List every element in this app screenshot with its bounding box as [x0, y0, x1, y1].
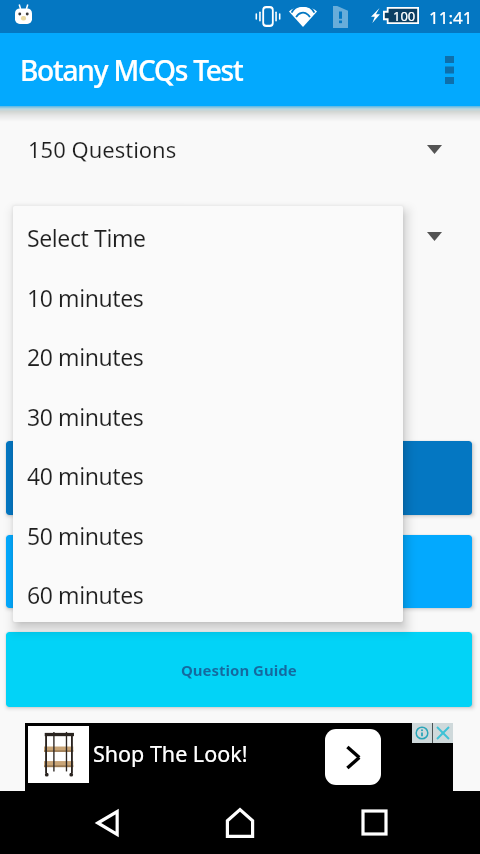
staticText: Question Guide [181, 660, 297, 680]
staticText: Select Time [28, 221, 146, 251]
staticText: 60 minutes [27, 579, 144, 610]
button[interactable]: Ad information [412, 723, 432, 743]
staticText: 150 Questions [28, 134, 177, 164]
button[interactable]: Back [74, 791, 140, 854]
button[interactable]: Select Time [13, 207, 403, 267]
button[interactable]: Home [207, 791, 273, 854]
staticText: 11:41 [429, 6, 473, 29]
staticText: 30 minutes [27, 401, 144, 432]
staticText: 40 minutes [27, 460, 144, 491]
staticText: 100 [393, 7, 416, 24]
button[interactable]: Result [6, 535, 472, 608]
button[interactable]: 150 Questions [0, 106, 480, 191]
button[interactable]: 50 minutes [13, 505, 403, 565]
button[interactable]: 20 minutes [13, 326, 403, 386]
staticText: Select Time [27, 222, 146, 253]
button[interactable]: Start Test [6, 441, 472, 515]
staticText: 10 minutes [27, 282, 144, 313]
button[interactable]: More options [425, 33, 480, 106]
button[interactable]: 60 minutes [13, 564, 403, 622]
staticText: 50 minutes [27, 520, 144, 551]
staticText: Botany MCQs Test [20, 51, 243, 89]
button[interactable]: 30 minutes [13, 386, 403, 446]
button[interactable]: Select Time [0, 193, 480, 278]
button[interactable]: Close advertisement [433, 723, 453, 743]
button[interactable]: Recent apps [341, 791, 407, 854]
staticText: 20 minutes [27, 341, 144, 372]
button[interactable]: Open advertisement [325, 729, 381, 785]
button[interactable]: Advertisement: Shop The Look [25, 723, 453, 791]
button[interactable]: 40 minutes [13, 445, 403, 505]
button[interactable]: Question Guide [6, 632, 472, 707]
staticText: Shop The Look! [93, 739, 248, 768]
button[interactable]: 10 minutes [13, 267, 403, 327]
